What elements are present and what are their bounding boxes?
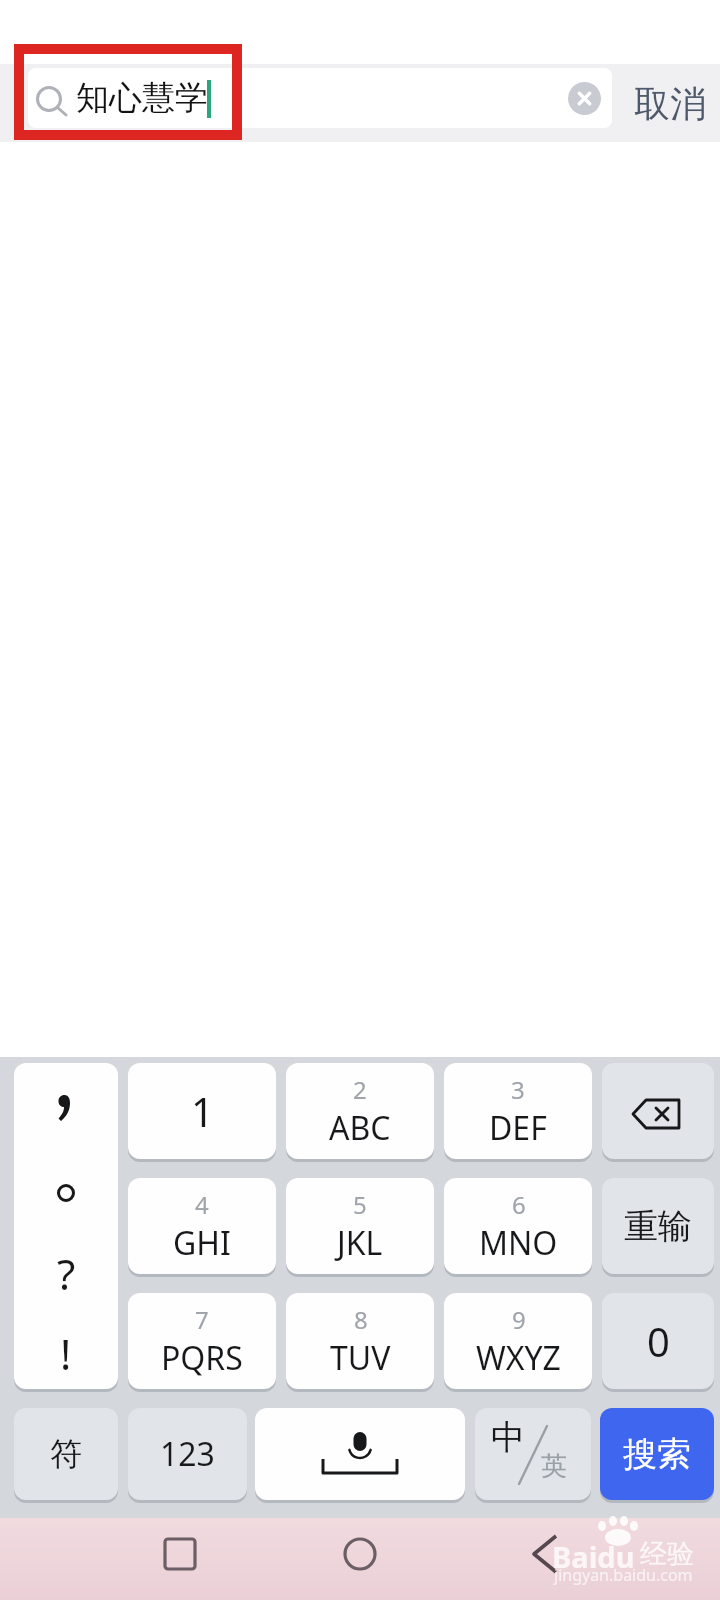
staticText: 知心慧学 [76, 77, 208, 119]
button[interactable] [343, 1537, 377, 1571]
button[interactable] [255, 1408, 465, 1500]
button[interactable]: 5 [286, 1178, 434, 1274]
button[interactable]: 重输 [602, 1178, 714, 1274]
button[interactable]: 0 [602, 1293, 714, 1389]
button[interactable] [28, 68, 612, 128]
staticText: DEF [489, 1106, 547, 1150]
button[interactable]: 3 [444, 1063, 592, 1159]
button[interactable] [163, 1537, 197, 1571]
button[interactable]: 搜索 [600, 1408, 714, 1500]
staticText: 0 [647, 1314, 670, 1368]
staticText: 英 [541, 1450, 567, 1483]
staticText: ? [57, 1245, 76, 1295]
button[interactable]: 9 [444, 1293, 592, 1389]
staticText: 123 [160, 1432, 215, 1476]
staticText: 取消 [634, 81, 706, 126]
staticText: MNO [479, 1221, 558, 1265]
button[interactable] [528, 1534, 562, 1574]
staticText: GHI [173, 1221, 231, 1265]
staticText: 中 [491, 1416, 525, 1459]
staticText: 3 [511, 1073, 525, 1106]
staticText: 重输 [624, 1205, 692, 1248]
staticText: 经验 [640, 1537, 694, 1569]
button[interactable]: 123 [128, 1408, 247, 1500]
staticText: ! [60, 1325, 72, 1375]
staticText: jingyan.baidu.com [554, 1564, 693, 1586]
button[interactable]: 7 [128, 1293, 276, 1389]
button[interactable]: 2 [286, 1063, 434, 1159]
staticText: 8 [354, 1303, 368, 1336]
button[interactable]: 4 [128, 1178, 276, 1274]
staticText: ABC [329, 1106, 391, 1150]
button[interactable]: 符 [14, 1408, 118, 1500]
staticText: JKL [337, 1221, 383, 1265]
staticText: 2 [353, 1073, 367, 1106]
staticText: PQRS [161, 1336, 243, 1380]
staticText: 4 [195, 1188, 209, 1221]
button[interactable]: 中 [475, 1408, 591, 1500]
staticText: 搜索 [623, 1433, 691, 1476]
button[interactable]: ? [14, 1063, 118, 1389]
button[interactable]: 1 [128, 1063, 276, 1159]
staticText: 9 [512, 1303, 526, 1336]
staticText: 1 [191, 1084, 214, 1138]
staticText: TUV [330, 1336, 391, 1380]
button[interactable] [602, 1063, 714, 1159]
button[interactable]: 8 [286, 1293, 434, 1389]
staticText: 6 [512, 1188, 526, 1221]
button[interactable]: 6 [444, 1178, 592, 1274]
button[interactable] [568, 82, 601, 115]
staticText: 5 [353, 1188, 367, 1221]
staticText: WXYZ [476, 1336, 561, 1380]
staticText: 7 [195, 1303, 209, 1336]
staticText: Baidu [552, 1537, 635, 1569]
button[interactable]: 取消 [620, 64, 720, 142]
staticText: 符 [50, 1434, 82, 1474]
